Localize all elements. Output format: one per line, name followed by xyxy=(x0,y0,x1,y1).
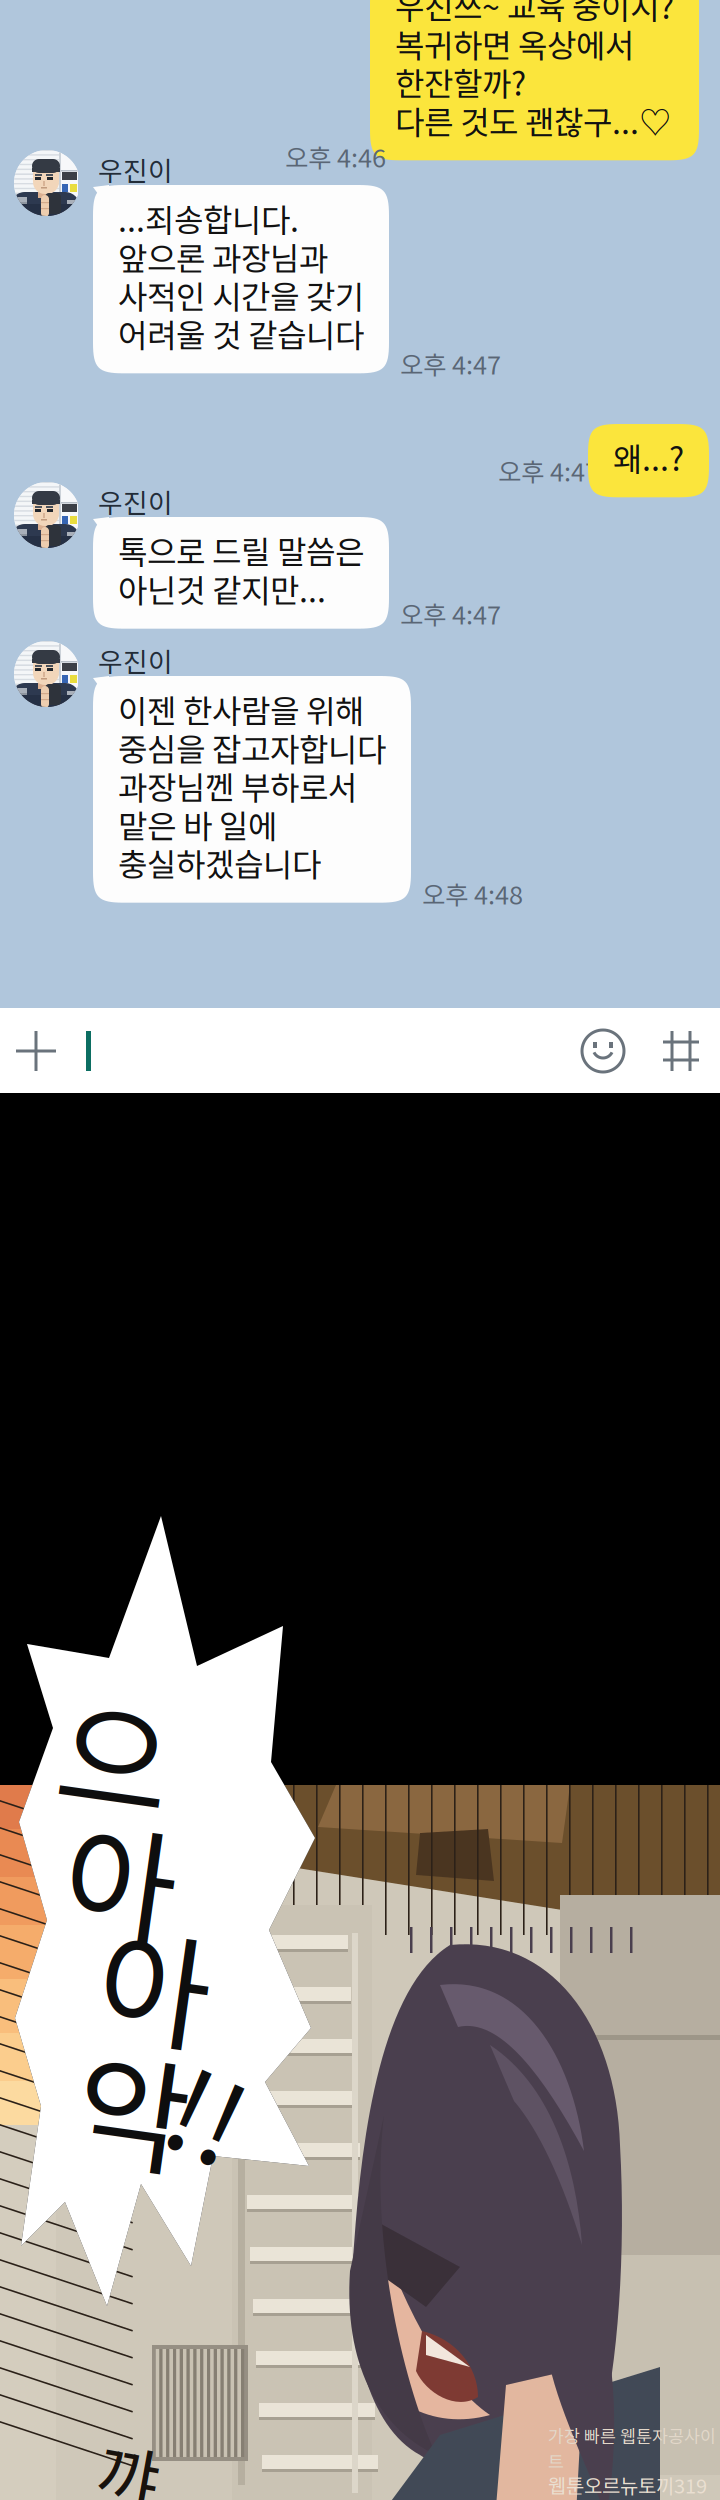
staticText: 오후 4:47 xyxy=(498,452,599,489)
staticText: 이젠 한사람을 위해 xyxy=(118,686,364,732)
staticText: 왜...? xyxy=(613,434,684,480)
staticText: 어려울 것 같습니다 xyxy=(118,310,364,356)
staticText: 다른 것도 괜찮구...♡ xyxy=(395,97,671,143)
staticText: 과장님껜 부하로서 xyxy=(118,763,357,809)
staticText: 오후 4:47 xyxy=(400,595,501,632)
staticText: 한잔할까? xyxy=(395,59,526,105)
staticText: 아 xyxy=(99,1894,212,2072)
staticText: 우진이 xyxy=(98,641,173,680)
staticText: 앞으론 과장님과 xyxy=(118,233,328,280)
staticText: 꺄 xyxy=(98,2425,159,2500)
staticText: 사적인 시간을 갖기 xyxy=(118,272,364,318)
staticText: 아 xyxy=(65,1788,178,1966)
staticText: 복귀하면 옥상에서 xyxy=(395,20,634,67)
button[interactable]: ...죄송합니다. xyxy=(93,185,389,373)
button[interactable]: Emoji xyxy=(580,1028,626,1074)
staticText: 오후 4:46 xyxy=(285,138,386,175)
staticText: !! xyxy=(173,2030,245,2192)
staticText: 아닌것 같지만... xyxy=(118,565,326,612)
button[interactable]: 우진쓰~ 교육 중이시? xyxy=(370,0,699,160)
staticText: 맡은 바 일에 xyxy=(118,801,277,847)
staticText: ...죄송합니다. xyxy=(118,195,299,241)
staticText: 충실하겠습니다 xyxy=(118,839,321,886)
button[interactable]: 왜...? xyxy=(588,424,709,497)
staticText: HTTPS://NEWTOKI319.COM xyxy=(548,2496,673,2500)
staticText: 우진쓰~ 교육 중이시? xyxy=(395,0,674,28)
staticText: 중심을 잡고자합니다 xyxy=(118,724,386,771)
staticText: 우진이 xyxy=(98,150,173,189)
staticText: 악 xyxy=(77,2018,190,2196)
staticText: 웹툰오르뉴토끼319 xyxy=(548,2470,707,2499)
button[interactable]: Add attachment xyxy=(13,1028,59,1074)
staticText: 톡으로 드릴 말씀은 xyxy=(118,527,364,573)
staticText: 으 xyxy=(59,1664,172,1842)
button[interactable]: 이젠 한사람을 위해 xyxy=(93,676,411,903)
staticText: 우진이 xyxy=(98,482,173,521)
staticText: 가장 빠른 웹툰자공사이트 xyxy=(548,2423,716,2473)
button[interactable]: 톡으로 드릴 말씀은 xyxy=(93,517,389,629)
button[interactable]: Shortcuts xyxy=(658,1028,704,1074)
staticText: 오후 4:48 xyxy=(422,875,523,912)
staticText: 오후 4:47 xyxy=(400,345,501,382)
